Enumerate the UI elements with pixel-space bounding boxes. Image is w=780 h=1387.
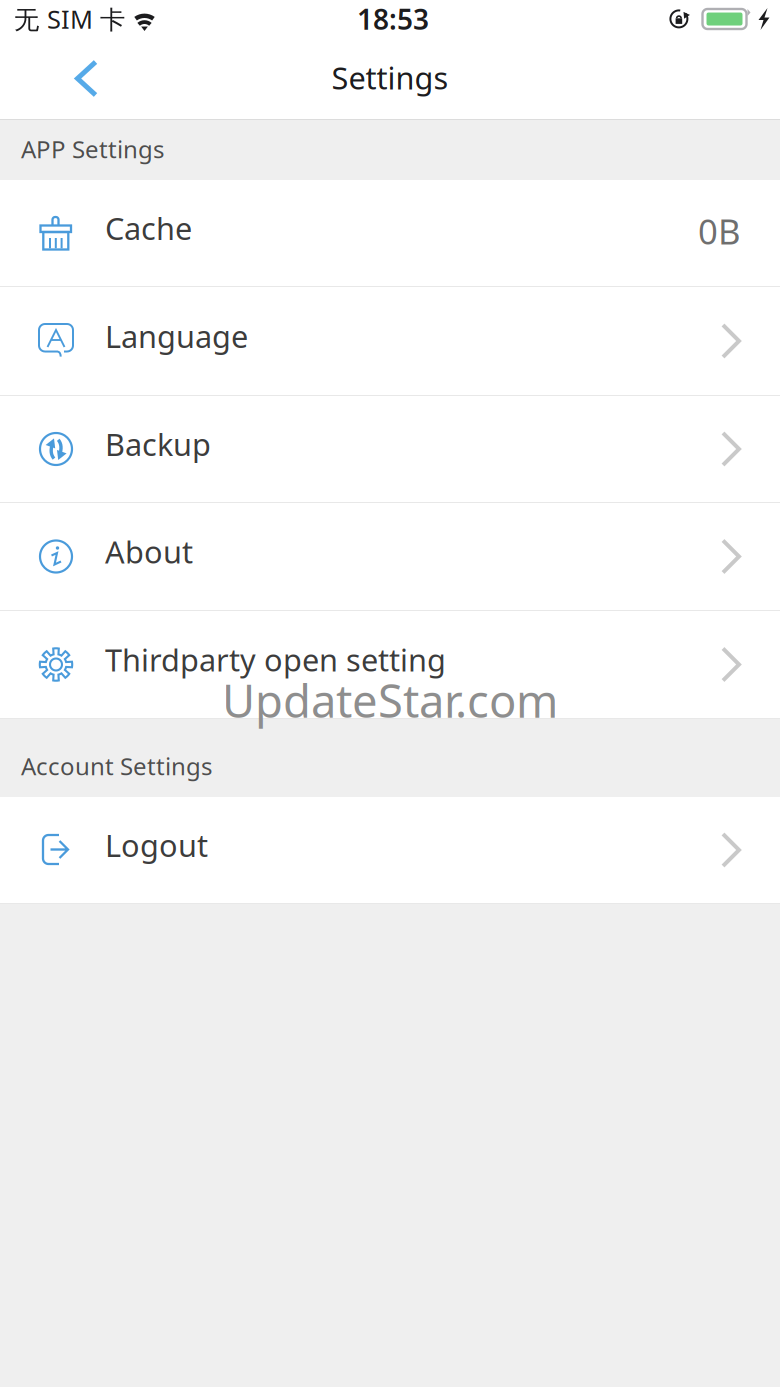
staticText: Account Settings — [21, 750, 212, 782]
staticText: Cache — [105, 208, 192, 248]
staticText: APP Settings — [21, 133, 164, 165]
staticText: 0B — [698, 208, 741, 254]
button[interactable]: Thirdparty open setting — [0, 611, 780, 719]
staticText: About — [105, 531, 193, 572]
staticText: Settings — [331, 57, 448, 98]
staticText: 无 SIM 卡 — [14, 2, 125, 36]
staticText: Language — [105, 316, 248, 356]
staticText: Logout — [105, 825, 208, 865]
staticText: 18:53 — [357, 0, 429, 38]
staticText: Thirdparty open setting — [105, 639, 446, 680]
button[interactable]: Back — [0, 38, 117, 119]
button[interactable]: Cache — [0, 180, 780, 287]
staticText: UpdateStar.com — [222, 670, 558, 730]
staticText: Backup — [105, 424, 211, 464]
button[interactable]: Language — [0, 287, 780, 396]
button[interactable]: Logout — [0, 797, 780, 904]
button[interactable]: Backup — [0, 396, 780, 503]
button[interactable]: About — [0, 503, 780, 611]
